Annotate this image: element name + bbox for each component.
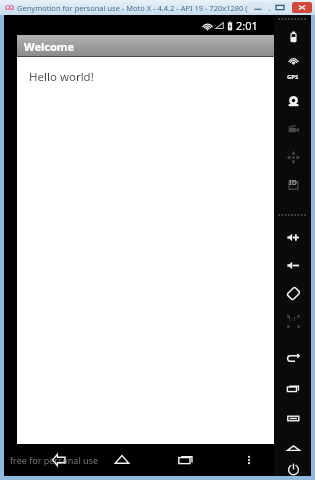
button[interactable]: Volume down	[279, 251, 307, 279]
button[interactable]: Device ID	[279, 171, 307, 199]
button[interactable]: More options	[234, 445, 264, 475]
button[interactable]: Window button	[270, 2, 290, 13]
button[interactable]: Back	[44, 445, 74, 475]
staticText: Genymotion for personal use - Moto X - 4…	[17, 3, 271, 13]
button[interactable]: Volume up	[279, 223, 307, 251]
button[interactable]: Recent apps	[278, 373, 308, 403]
button[interactable]: GPS	[279, 51, 307, 79]
button[interactable]: Video recorder	[279, 115, 307, 143]
button[interactable]: Back	[278, 343, 308, 373]
staticText: Welcome	[24, 39, 75, 54]
button[interactable]: Home	[107, 445, 137, 475]
button[interactable]: Home	[278, 433, 308, 463]
staticText: 2:01	[236, 18, 258, 33]
button[interactable]: Window button	[248, 2, 268, 13]
button[interactable]: Rotate screen	[279, 279, 307, 307]
button[interactable]: Camera	[279, 87, 307, 115]
staticText: free for personal use	[10, 454, 99, 466]
button[interactable]: Menu	[278, 403, 308, 433]
button[interactable]: Recent apps	[171, 445, 201, 475]
button[interactable]: Welcome	[17, 35, 274, 57]
button[interactable]: Window button	[292, 2, 312, 13]
staticText: Hello world!	[29, 69, 94, 85]
button[interactable]: Power	[278, 463, 308, 476]
button[interactable]: Scale 1:1	[279, 307, 307, 335]
staticText: 1:1	[288, 315, 297, 323]
staticText: GPS	[287, 73, 299, 81]
staticText: ID	[289, 178, 297, 188]
button[interactable]: Accelerometer	[279, 143, 307, 171]
button[interactable]: Battery widget	[279, 23, 307, 51]
